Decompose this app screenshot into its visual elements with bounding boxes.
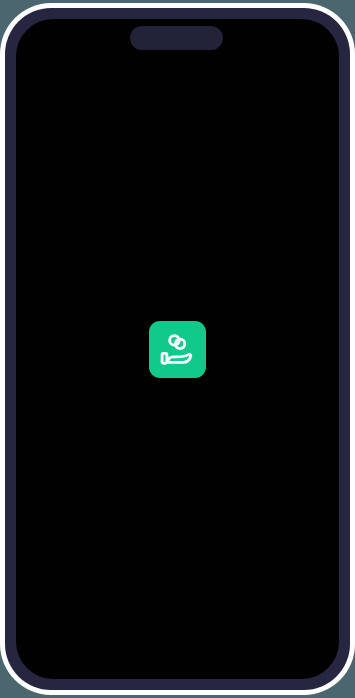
button[interactable]: App logo: money in hand — [149, 321, 206, 378]
